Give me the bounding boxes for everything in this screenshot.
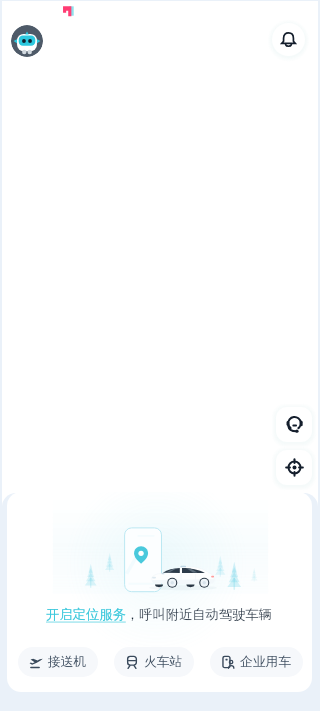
- button[interactable]: My location: [276, 450, 312, 485]
- staticText: 企业用车: [240, 654, 292, 670]
- button[interactable]: Profile: [11, 25, 43, 57]
- staticText: 接送机: [48, 654, 87, 670]
- button[interactable]: Customer service: [276, 407, 312, 442]
- staticText: 开启定位服务，呼叫附近自动驾驶车辆: [46, 606, 273, 623]
- button[interactable]: 企业用车: [210, 647, 303, 677]
- button[interactable]: 接送机: [18, 647, 98, 677]
- button[interactable]: Notifications: [272, 23, 305, 56]
- button[interactable]: 火车站: [114, 647, 194, 677]
- staticText: 火车站: [144, 654, 183, 670]
